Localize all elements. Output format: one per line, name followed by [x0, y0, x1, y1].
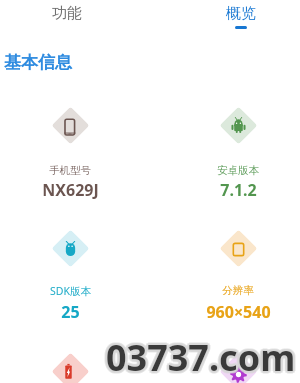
- staticText: 基本信息: [4, 52, 72, 73]
- staticText: SDK版本: [50, 284, 91, 298]
- staticText: 手机型号: [49, 164, 91, 177]
- button[interactable]: [217, 350, 259, 383]
- staticText: 03737.com: [103, 333, 293, 382]
- staticText: 03737.com: [105, 335, 295, 383]
- staticText: 03737.com: [106, 332, 296, 381]
- staticText: 03737.com: [107, 333, 297, 382]
- staticText: 7.1.2: [220, 179, 257, 201]
- staticText: 25: [61, 301, 80, 323]
- button[interactable]: [49, 227, 91, 269]
- staticText: 03737.com: [105, 332, 295, 381]
- staticText: 03737.com: [106, 335, 296, 383]
- staticText: 03737.com: [105, 331, 295, 380]
- staticText: 分辨率: [222, 284, 254, 297]
- staticText: 03737.com: [106, 330, 296, 379]
- staticText: 03737.com: [104, 335, 294, 383]
- staticText: 03737.com: [105, 334, 295, 383]
- staticText: NX629J: [42, 179, 99, 201]
- button[interactable]: 概览: [209, 0, 273, 33]
- button[interactable]: [217, 104, 259, 146]
- staticText: 概览: [226, 4, 256, 23]
- button[interactable]: [49, 350, 91, 383]
- staticText: 03737.com: [104, 331, 294, 380]
- staticText: 03737.com: [108, 333, 298, 382]
- staticText: 960×540: [206, 301, 271, 323]
- staticText: 03737.com: [108, 332, 298, 381]
- staticText: 03737.com: [106, 334, 296, 383]
- button[interactable]: [217, 227, 259, 269]
- staticText: 安卓版本: [217, 164, 259, 177]
- staticText: 03737.com: [106, 333, 296, 382]
- button[interactable]: [49, 104, 91, 146]
- staticText: 03737.com: [104, 333, 294, 382]
- staticText: 03737.com: [108, 331, 298, 380]
- staticText: 03737.com: [107, 335, 297, 383]
- staticText: 03737.com: [108, 334, 298, 383]
- button[interactable]: 功能: [35, 0, 99, 33]
- staticText: 03737.com: [104, 334, 294, 383]
- staticText: 03737.com: [107, 332, 297, 381]
- staticText: 03737.com: [106, 331, 296, 380]
- staticText: 03737.com: [108, 335, 298, 383]
- staticText: 03737.com: [105, 333, 295, 382]
- staticText: 03737.com: [107, 334, 297, 383]
- staticText: 03737.com: [106, 336, 296, 383]
- staticText: 03737.com: [104, 332, 294, 381]
- staticText: 03737.com: [109, 333, 299, 382]
- staticText: 功能: [52, 4, 82, 23]
- staticText: 03737.com: [107, 331, 297, 380]
